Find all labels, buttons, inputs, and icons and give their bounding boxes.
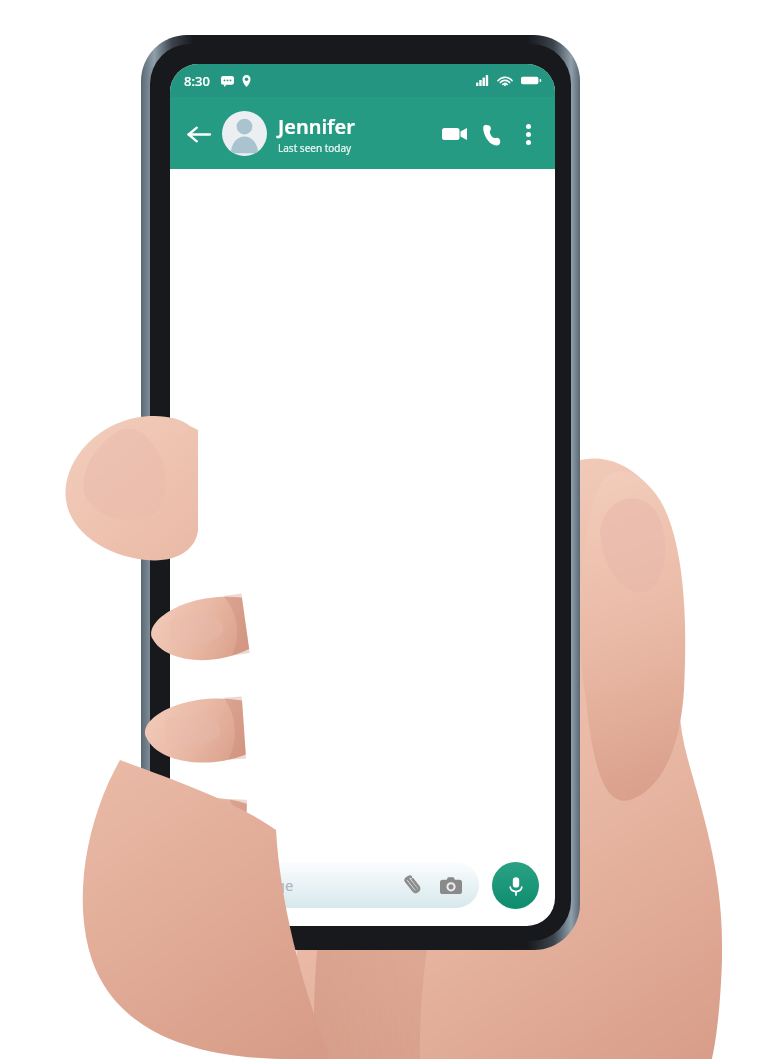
staticText: Message — [231, 875, 399, 895]
staticText: Last seen today — [278, 141, 352, 155]
button[interactable]: Contact photo — [222, 111, 267, 156]
staticText: Jennifer — [278, 113, 355, 140]
staticText: 8:30 — [184, 72, 210, 90]
button[interactable]: Attach — [399, 871, 427, 899]
button[interactable]: Video call — [435, 115, 473, 153]
button[interactable]: Back — [182, 117, 216, 151]
button[interactable]: Camera — [437, 871, 465, 899]
button[interactable]: Message — [201, 862, 465, 908]
button[interactable]: Voice message — [492, 862, 539, 909]
button[interactable]: More options — [511, 117, 545, 151]
button[interactable]: Call — [473, 115, 511, 153]
